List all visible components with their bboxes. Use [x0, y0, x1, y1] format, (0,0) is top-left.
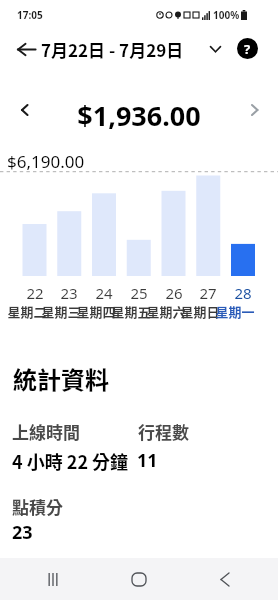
- button[interactable]: Home: [126, 566, 152, 592]
- staticText: 23: [60, 283, 78, 303]
- button[interactable]: 7月22日 - 7月29日: [41, 37, 184, 62]
- staticText: 26: [165, 283, 183, 303]
- button[interactable]: Back: [8, 31, 44, 67]
- staticText: 22: [26, 283, 44, 303]
- staticText: 28: [234, 283, 252, 303]
- staticText: 星期日: [180, 302, 220, 321]
- staticText: 上線時間: [12, 419, 80, 444]
- staticText: 星期六: [146, 302, 186, 321]
- staticText: 點積分: [12, 494, 63, 519]
- staticText: 統計資料: [13, 361, 109, 396]
- staticText: 行程數: [138, 419, 189, 444]
- staticText: 星期二: [7, 302, 47, 321]
- staticText: 27: [199, 283, 217, 303]
- staticText: $1,936.00: [0, 97, 278, 134]
- button[interactable]: Next week: [238, 94, 270, 126]
- staticText: 星期五: [111, 302, 151, 321]
- staticText: 11: [137, 448, 158, 473]
- staticText: 星期一: [215, 302, 255, 321]
- button[interactable]: Expand: [205, 38, 226, 59]
- staticText: 24: [95, 283, 113, 303]
- button[interactable]: Back: [212, 566, 238, 592]
- staticText: 星期四: [76, 302, 116, 321]
- staticText: 4 小時 22 分鐘: [12, 448, 129, 474]
- staticText: 17:05: [17, 8, 43, 22]
- staticText: 星期三: [41, 302, 81, 321]
- staticText: 7月22日 - 7月29日: [41, 37, 184, 62]
- button[interactable]: Help: [237, 38, 258, 59]
- staticText: 100%: [213, 8, 240, 22]
- staticText: $6,190.00: [7, 150, 85, 173]
- staticText: ?: [244, 40, 251, 58]
- button[interactable]: Previous week: [8, 94, 40, 126]
- staticText: 23: [12, 520, 33, 545]
- staticText: 25: [130, 283, 148, 303]
- button[interactable]: Recents: [40, 566, 66, 592]
